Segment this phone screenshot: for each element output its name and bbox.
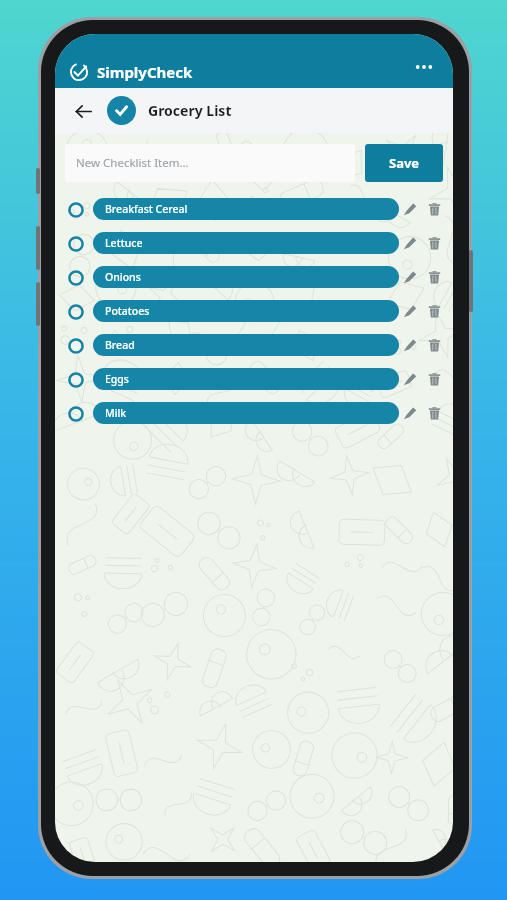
button[interactable]: Delete Potatoes — [423, 300, 445, 322]
button[interactable]: Toggle Lettuce — [65, 233, 86, 254]
button[interactable]: Delete Breakfast Cereal — [423, 198, 445, 220]
button[interactable]: Edit Eggs — [399, 368, 421, 390]
button[interactable]: Onions — [93, 266, 399, 288]
button[interactable]: Delete Milk — [423, 402, 445, 424]
staticText: Onions — [105, 270, 141, 284]
button[interactable]: Toggle Milk — [65, 403, 86, 424]
button[interactable]: Back — [69, 97, 97, 125]
staticText: Grocery List — [148, 101, 232, 120]
button[interactable]: Edit Lettuce — [399, 232, 421, 254]
button[interactable]: Eggs — [93, 368, 399, 390]
button[interactable]: Delete Onions — [423, 266, 445, 288]
button[interactable]: Toggle Eggs — [65, 369, 86, 390]
button[interactable]: Toggle Potatoes — [65, 301, 86, 322]
staticText: SimplyCheck — [97, 62, 193, 82]
staticText: Eggs — [105, 372, 129, 386]
button[interactable]: Toggle Bread — [65, 335, 86, 356]
staticText: Potatoes — [105, 304, 150, 318]
staticText: Lettuce — [105, 236, 143, 250]
button[interactable]: Save — [365, 144, 443, 182]
button[interactable]: SimplyCheck — [69, 62, 193, 82]
staticText: New Checklist Item... — [76, 155, 189, 171]
button[interactable]: Delete Eggs — [423, 368, 445, 390]
staticText: Breakfast Cereal — [105, 202, 188, 216]
button[interactable]: Lettuce — [93, 232, 399, 254]
button[interactable]: Delete Lettuce — [423, 232, 445, 254]
button[interactable]: New Checklist Item... — [65, 144, 355, 182]
button[interactable]: Toggle Onions — [65, 267, 86, 288]
button[interactable]: Milk — [93, 402, 399, 424]
staticText: Milk — [105, 406, 127, 420]
button[interactable]: Bread — [93, 334, 399, 356]
staticText: Save — [389, 154, 420, 172]
button[interactable]: Toggle Breakfast Cereal — [65, 199, 86, 220]
button[interactable]: Edit Breakfast Cereal — [399, 198, 421, 220]
button[interactable]: Edit Potatoes — [399, 300, 421, 322]
button[interactable]: Delete Bread — [423, 334, 445, 356]
button[interactable]: Edit Bread — [399, 334, 421, 356]
button[interactable]: Edit Onions — [399, 266, 421, 288]
staticText: Bread — [105, 338, 135, 352]
button[interactable]: Potatoes — [93, 300, 399, 322]
button[interactable]: Edit Milk — [399, 402, 421, 424]
button[interactable]: More options — [409, 52, 439, 82]
button[interactable]: Breakfast Cereal — [93, 198, 399, 220]
